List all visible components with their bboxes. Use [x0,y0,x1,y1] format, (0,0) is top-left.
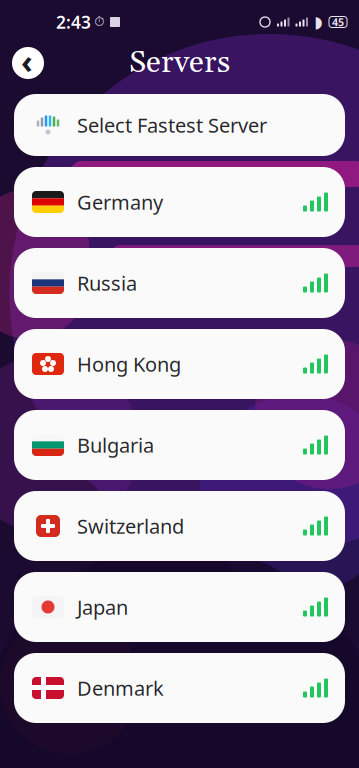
staticText: Hong Kong [77,351,181,377]
staticText: ⏱ [91,15,104,28]
button[interactable]: Back [12,42,44,84]
staticText: Denmark [77,675,164,701]
staticText: ◗ [314,13,322,31]
button[interactable]: Germany [14,167,345,237]
button[interactable]: Hong Kong [14,329,345,399]
button[interactable]: Japan [14,572,345,642]
button[interactable]: Select Fastest Server [14,94,345,156]
staticText: 45 [332,15,344,29]
button[interactable]: Switzerland [14,491,345,561]
staticText: ‹ [21,40,33,82]
button[interactable]: Bulgaria [14,410,345,480]
staticText: Bulgaria [77,432,154,458]
staticText: Servers [129,43,230,82]
staticText: Select Fastest Server [77,112,267,138]
button[interactable]: Russia [14,248,345,318]
staticText: Russia [77,270,137,296]
staticText: 2:43 [56,10,91,33]
button[interactable]: Denmark [14,653,345,723]
staticText: Switzerland [77,513,184,539]
staticText: Japan [77,594,128,620]
staticText: Germany [77,189,163,215]
